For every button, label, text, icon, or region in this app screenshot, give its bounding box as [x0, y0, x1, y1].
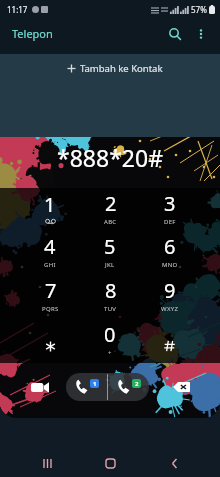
staticText: ABC — [104, 218, 117, 226]
staticText: PQRS — [42, 305, 59, 313]
staticText: MNO — [162, 261, 178, 269]
button[interactable] — [140, 319, 200, 363]
button[interactable]: 0 — [80, 319, 140, 363]
button[interactable]: Search — [161, 20, 189, 48]
staticText: JKL — [105, 261, 115, 269]
staticText: 9 — [164, 277, 176, 304]
staticText: 1 — [44, 191, 56, 218]
staticText: 8 — [105, 277, 117, 304]
button[interactable]: 1 — [20, 188, 80, 231]
staticText: 0 — [104, 321, 116, 348]
staticText: 2 — [105, 190, 117, 217]
staticText: GHI — [44, 261, 56, 269]
staticText: 6 — [164, 233, 176, 260]
button[interactable]: Recents — [30, 446, 64, 477]
staticText: 7 — [45, 277, 57, 304]
staticText: 3 — [164, 190, 176, 217]
button[interactable]: 7 — [20, 275, 80, 319]
button[interactable]: 2 — [80, 188, 140, 231]
button[interactable]: Call with SIM 1 — [66, 373, 107, 401]
button[interactable]: More options — [189, 22, 213, 46]
button[interactable]: 8 — [80, 275, 140, 319]
staticText: 4 — [44, 233, 56, 260]
button[interactable] — [20, 319, 80, 363]
button[interactable]: 5 — [80, 231, 140, 275]
staticText: TUV — [104, 305, 117, 313]
staticText: DEF — [164, 218, 176, 226]
button[interactable]: Back — [157, 446, 191, 477]
button[interactable]: 6 — [140, 231, 200, 275]
button[interactable]: Video call — [22, 369, 58, 405]
button[interactable]: 4 — [20, 231, 80, 275]
staticText: 11:17 — [7, 4, 28, 15]
staticText: + — [108, 349, 112, 357]
staticText: 5 — [104, 233, 116, 260]
button[interactable]: Backspace — [163, 369, 199, 405]
staticText: 2 — [135, 380, 139, 388]
staticText: *888*20# — [57, 142, 163, 173]
button[interactable]: 9 — [140, 275, 200, 319]
staticText: 57% — [191, 4, 207, 15]
button[interactable]: Home — [93, 446, 127, 477]
staticText: 1 — [93, 380, 97, 388]
staticText: Telepon — [12, 26, 53, 41]
button[interactable]: Call with SIM 2 — [108, 373, 149, 401]
button[interactable]: 3 — [140, 188, 200, 231]
staticText: Tambah ke Kontak — [80, 62, 163, 75]
button[interactable]: Tambah ke Kontak — [0, 54, 220, 137]
staticText: WXYZ — [161, 305, 179, 313]
